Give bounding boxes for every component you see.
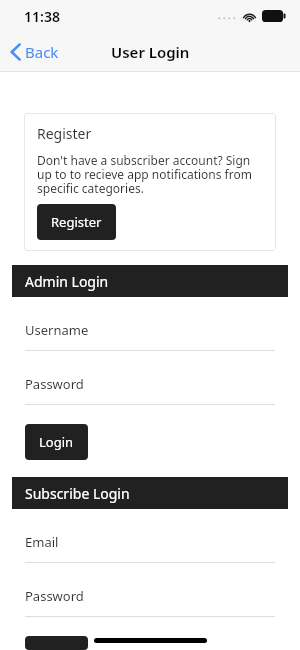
button[interactable]: Login (25, 424, 88, 460)
staticText: Subscribe Login (25, 484, 130, 503)
staticText: Don't have a subscriber account? Sign up… (37, 152, 263, 197)
staticText: User Login (111, 42, 190, 62)
button[interactable]: Login (25, 636, 88, 650)
button[interactable]: Register (37, 204, 116, 240)
staticText: Register (51, 213, 102, 231)
staticText: Back (25, 42, 59, 62)
staticText: Admin Login (25, 272, 109, 291)
staticText: Password (25, 375, 84, 393)
button[interactable]: Back (0, 32, 69, 72)
staticText: Register (37, 124, 92, 143)
staticText: Login (39, 433, 74, 451)
staticText: Username (25, 321, 89, 339)
button[interactable]: Admin Login (12, 265, 288, 297)
staticText: Email (25, 533, 59, 551)
staticText: 11:38 (24, 7, 60, 26)
staticText: Password (25, 587, 84, 605)
button[interactable]: Subscribe Login (12, 477, 288, 509)
